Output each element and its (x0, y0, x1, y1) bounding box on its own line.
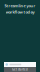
button[interactable]: Get started (4, 67, 36, 72)
staticText: Get started (12, 68, 28, 71)
staticText: workflow today (5, 9, 34, 15)
staticText: Streamline your (4, 3, 35, 8)
